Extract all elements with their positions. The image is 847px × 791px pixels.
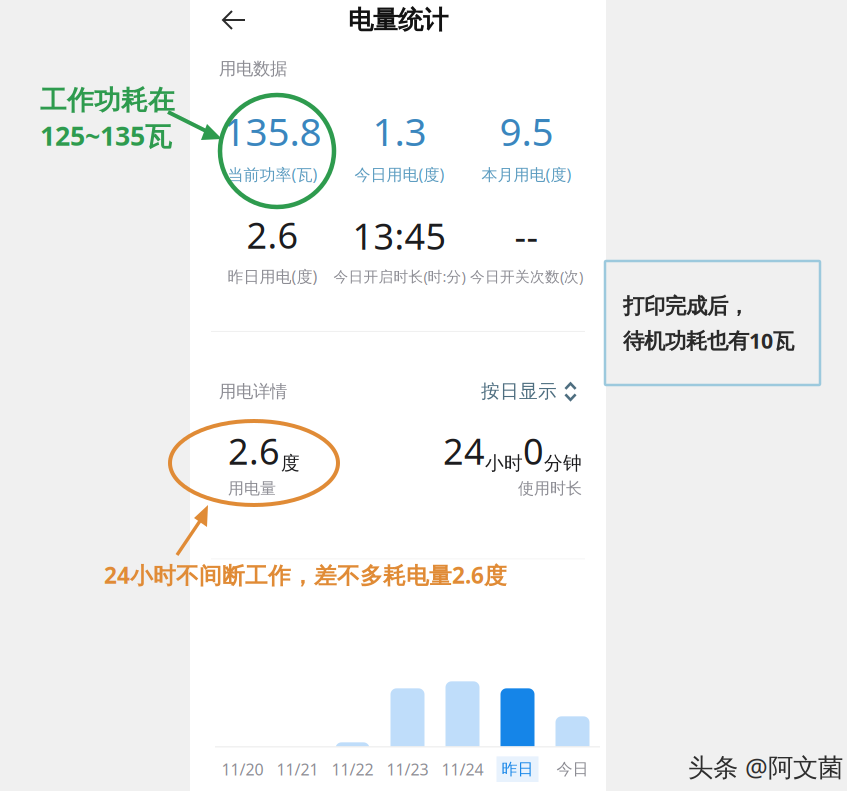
staticText: 1.3	[372, 105, 426, 157]
staticText: 度	[281, 452, 300, 475]
staticText: 打印完成后，	[623, 293, 749, 319]
staticText: 用电数据	[219, 58, 287, 79]
staticText: 11/24	[441, 758, 483, 780]
staticText: 今日用电(度)	[354, 164, 444, 185]
staticText: 工作功耗在	[40, 84, 175, 117]
staticText: 本月用电(度)	[481, 164, 571, 185]
staticText: 11/20	[221, 758, 263, 780]
staticText: 昨日用电(度)	[227, 266, 317, 287]
staticText: 今日开关次数(次)	[470, 267, 583, 286]
button[interactable]: 返回	[214, 3, 254, 37]
staticText: 13:45	[352, 212, 446, 260]
staticText: 当前功率(瓦)	[227, 164, 317, 185]
staticText: 135.8	[223, 105, 321, 157]
staticText: 用电详情	[219, 381, 287, 402]
staticText: 11/21	[276, 758, 318, 780]
staticText: 今日开启时长(时:分)	[333, 267, 465, 286]
staticText: 24	[443, 427, 485, 475]
staticText: 2.6	[228, 427, 280, 475]
staticText: 昨日	[501, 759, 533, 779]
staticText: 用电量	[228, 479, 276, 498]
button[interactable]: 按日显示	[481, 380, 577, 403]
staticText: 分钟	[544, 452, 582, 475]
staticText: 0	[523, 427, 544, 475]
staticText: 24小时不间断工作，差不多耗电量2.6度	[104, 560, 507, 590]
staticText: 小时	[485, 452, 523, 475]
staticText: 11/22	[331, 758, 373, 780]
staticText: 头条 @阿文菌	[688, 750, 843, 784]
staticText: 今日	[556, 759, 588, 779]
staticText: 2.6	[246, 211, 298, 259]
staticText: 11/23	[386, 758, 428, 780]
staticText: 9.5	[499, 105, 553, 157]
staticText: 使用时长	[518, 479, 582, 498]
staticText: 125~135瓦	[40, 118, 172, 153]
staticText: 电量统计	[348, 4, 448, 35]
staticText: --	[514, 212, 538, 260]
staticText: 按日显示	[481, 380, 557, 403]
staticText: 待机功耗也有10瓦	[623, 326, 794, 354]
